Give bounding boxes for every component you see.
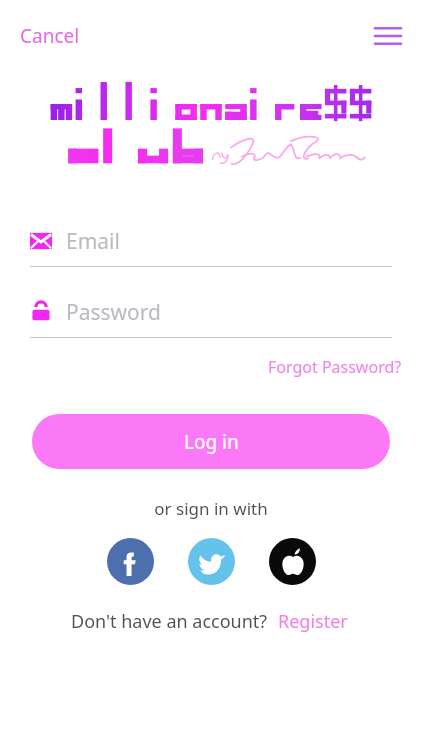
staticText: Don't have an account? <box>71 609 268 634</box>
button[interactable]: Password <box>30 295 392 338</box>
staticText: Forgot Password? <box>268 356 402 378</box>
staticText: Email <box>66 227 120 256</box>
button[interactable]: Sign in with Apple <box>269 538 316 585</box>
button[interactable]: Cancel <box>8 15 92 57</box>
button[interactable]: Sign in with Facebook <box>107 538 154 585</box>
staticText: Password <box>66 298 161 327</box>
staticText: Log in <box>184 429 239 455</box>
staticText: Cancel <box>20 23 80 49</box>
staticText: or sign in with <box>0 497 422 520</box>
button[interactable]: Log in <box>32 414 390 469</box>
button[interactable]: Forgot Password? <box>262 352 408 382</box>
button[interactable]: Sign in with Twitter <box>188 538 235 585</box>
button[interactable]: Menu <box>366 14 410 58</box>
staticText: Register <box>278 609 348 634</box>
button[interactable]: Email <box>30 224 392 267</box>
button[interactable]: Register <box>275 607 351 636</box>
